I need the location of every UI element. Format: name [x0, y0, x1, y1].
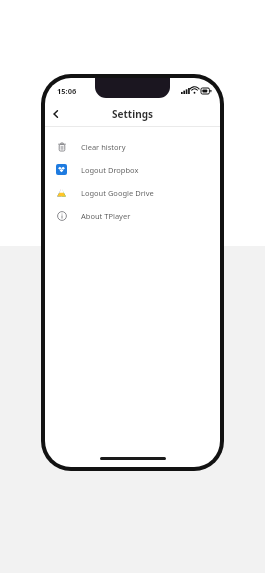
staticText: Clear history	[81, 142, 126, 152]
staticText: Logout Google Drive	[81, 188, 154, 198]
staticText: 15:06	[57, 86, 77, 96]
staticText: Logout Dropbox	[81, 165, 139, 175]
button[interactable]: About TPlayer	[45, 204, 220, 227]
button[interactable]: Logout Dropbox	[45, 158, 220, 181]
button[interactable]: Back	[45, 103, 67, 125]
button[interactable]: Logout Google Drive	[45, 181, 220, 204]
staticText: About TPlayer	[81, 211, 131, 221]
staticText: Settings	[112, 107, 153, 121]
button[interactable]: Clear history	[45, 135, 220, 158]
